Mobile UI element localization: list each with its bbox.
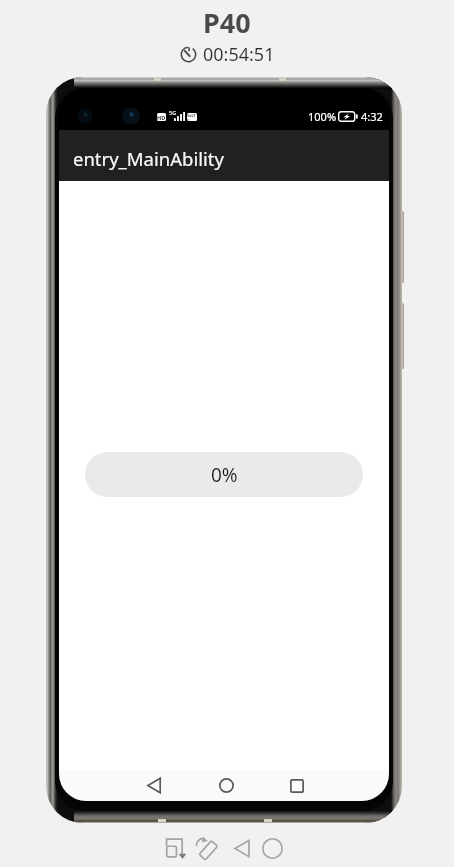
staticText: entry_MainAbility (73, 146, 224, 171)
button[interactable]: Home (260, 836, 284, 860)
staticText: P40 (203, 4, 251, 41)
button[interactable]: Recents (270, 770, 323, 801)
button[interactable]: Back (128, 770, 181, 801)
staticText: HD (157, 114, 166, 121)
button[interactable]: Rotate (194, 836, 218, 860)
staticText: VoLTE (187, 113, 197, 121)
staticText: 100% (308, 109, 337, 124)
staticText: 0% (211, 462, 238, 488)
button[interactable]: Home (200, 770, 253, 801)
staticText: 00:54:51 (203, 42, 275, 67)
staticText: 5G (169, 109, 177, 116)
button[interactable]: Back (230, 836, 254, 860)
staticText: 4:32 (361, 109, 383, 124)
button[interactable]: 0% (85, 452, 363, 497)
button[interactable]: Screenshot (164, 836, 188, 860)
